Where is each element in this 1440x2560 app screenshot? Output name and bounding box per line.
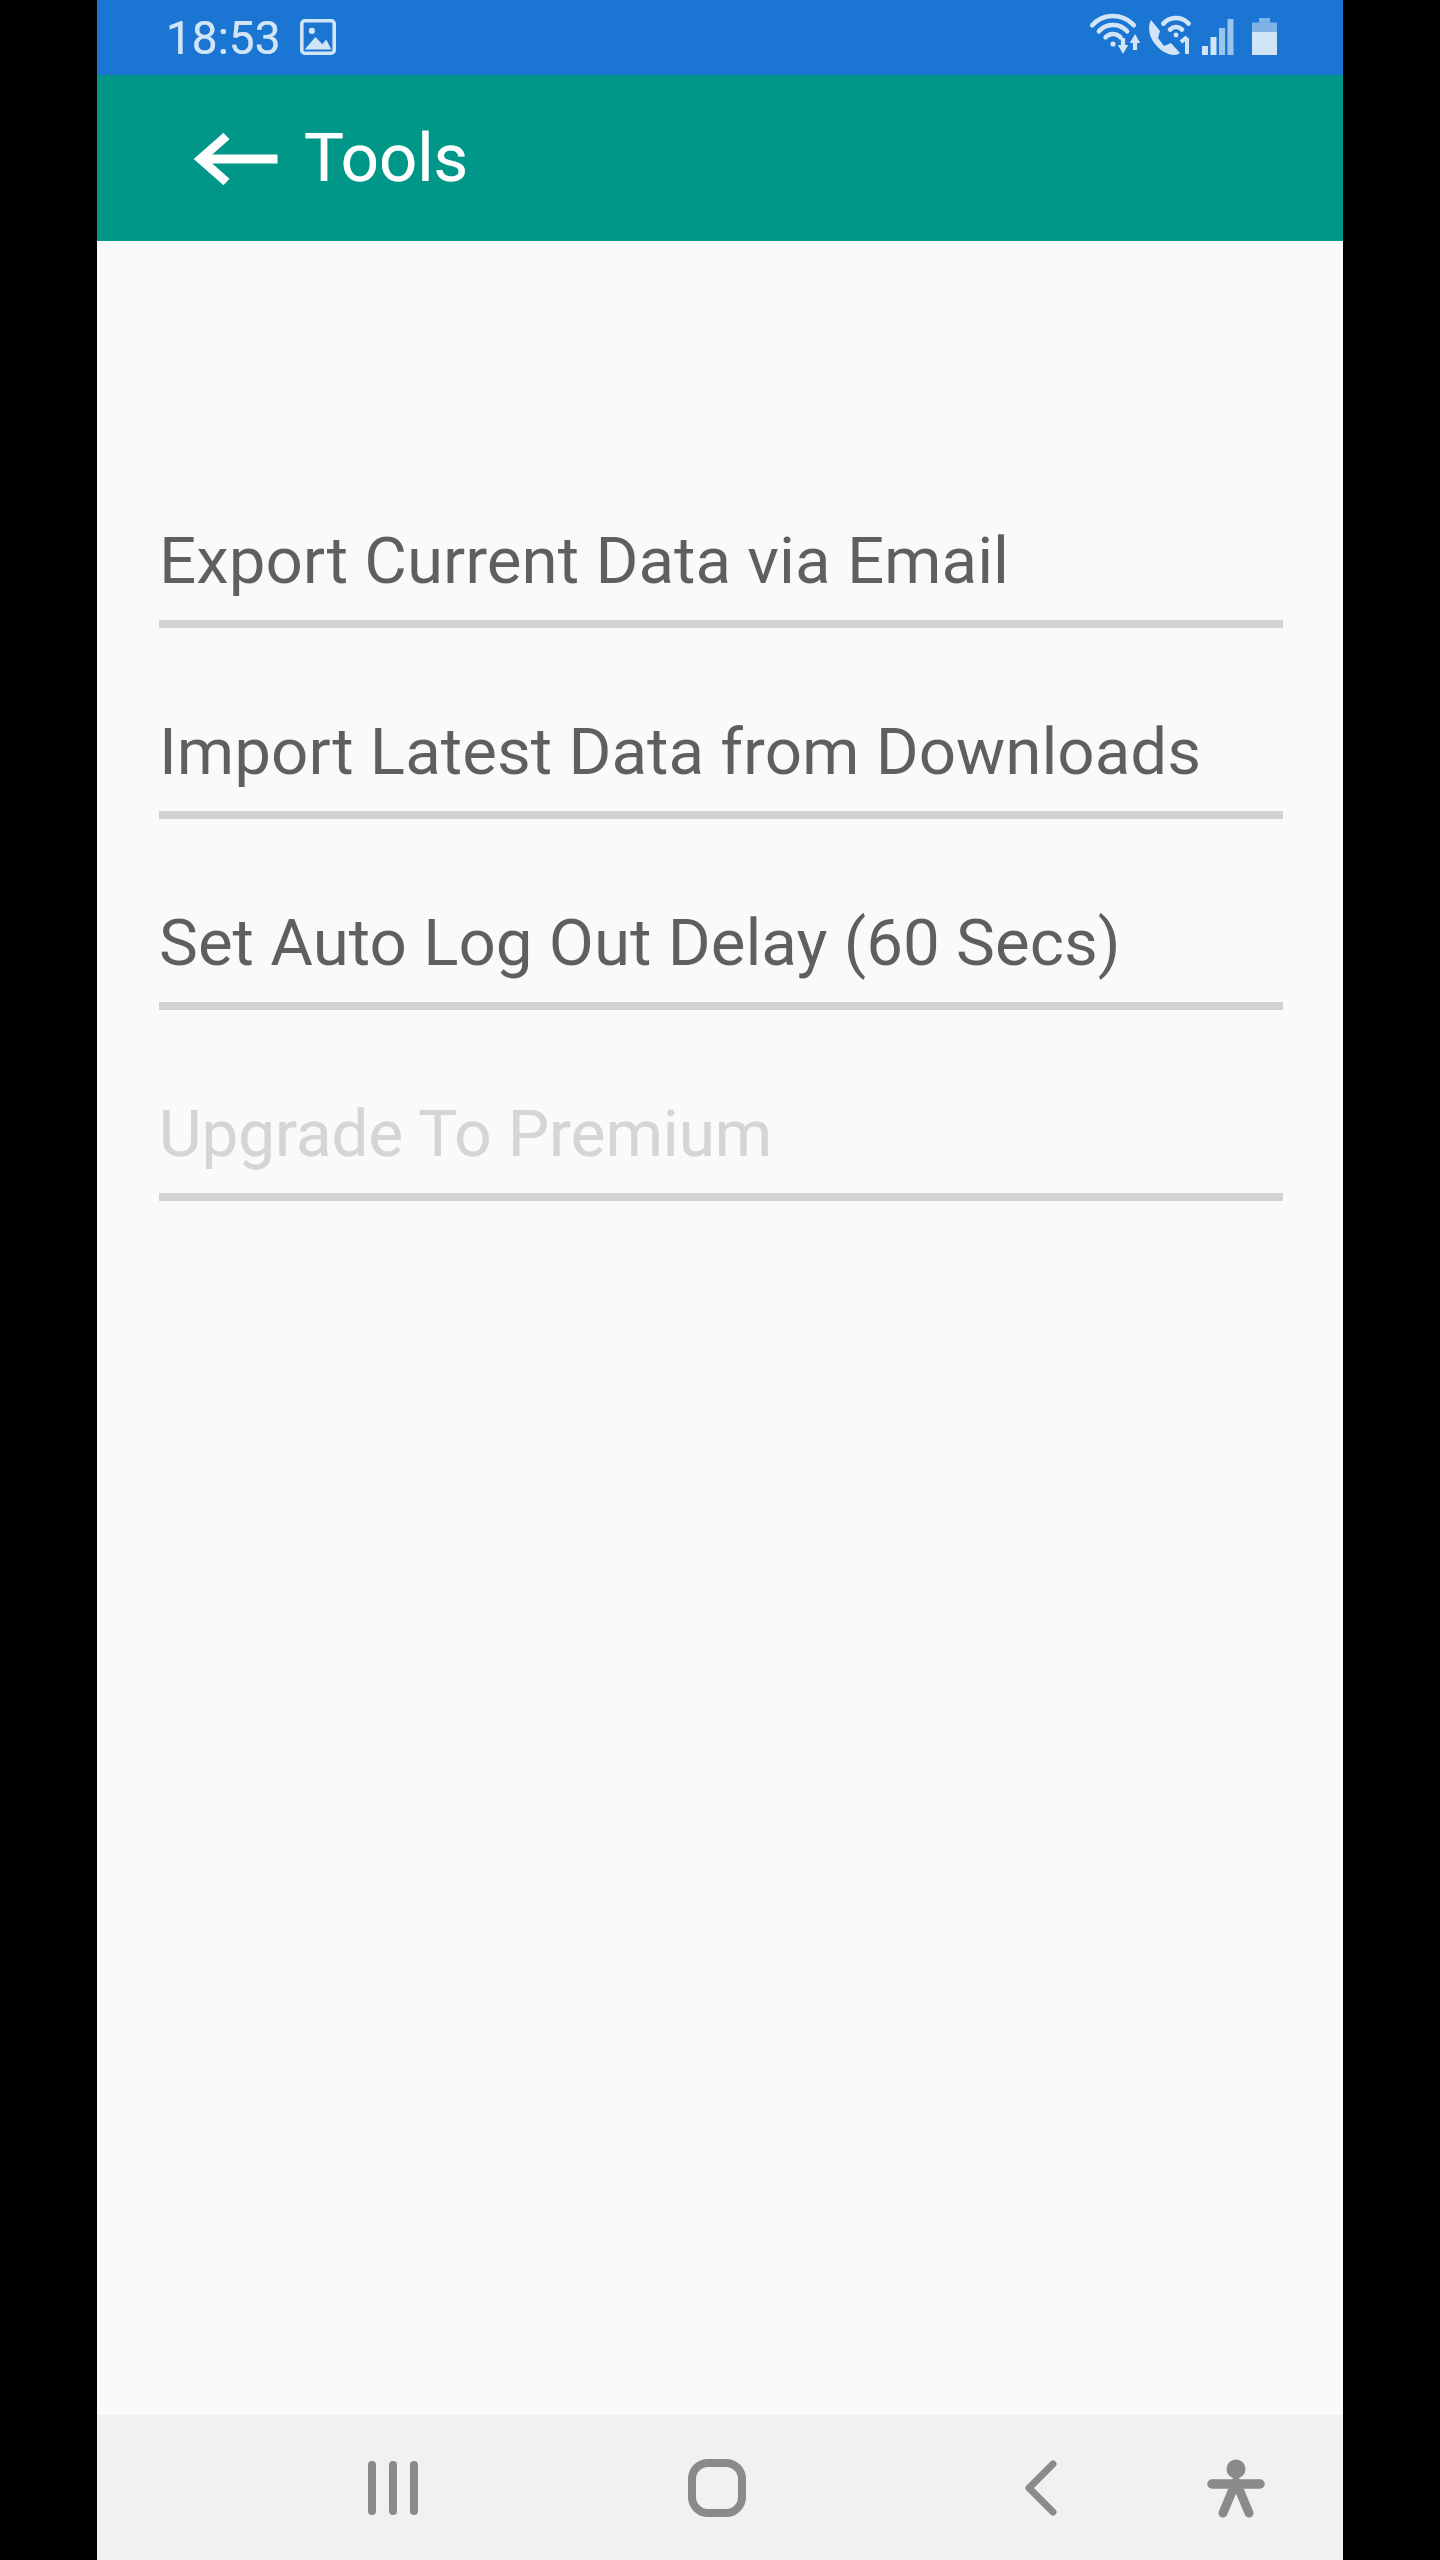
button[interactable]: Accessibility [1162,2415,1310,2560]
staticText: 18:53 [166,11,281,65]
button[interactable]: Upgrade To Premium [97,1010,1343,1201]
button[interactable]: Recent apps [319,2415,467,2560]
staticText: Export Current Data via Email [159,522,1010,599]
staticText: Set Auto Log Out Delay (60 Secs) [159,904,1121,981]
button[interactable]: Set Auto Log Out Delay (60 Secs) [97,819,1343,1010]
button[interactable]: Import Latest Data from Downloads [97,628,1343,819]
staticText: Tools [304,119,469,198]
button[interactable]: Export Current Data via Email [97,437,1343,628]
button[interactable]: Back [967,2415,1115,2560]
button[interactable]: Home [643,2415,791,2560]
button[interactable]: Navigate up [162,82,315,235]
staticText: Upgrade To Premium [159,1095,773,1172]
staticText: Import Latest Data from Downloads [159,713,1202,790]
